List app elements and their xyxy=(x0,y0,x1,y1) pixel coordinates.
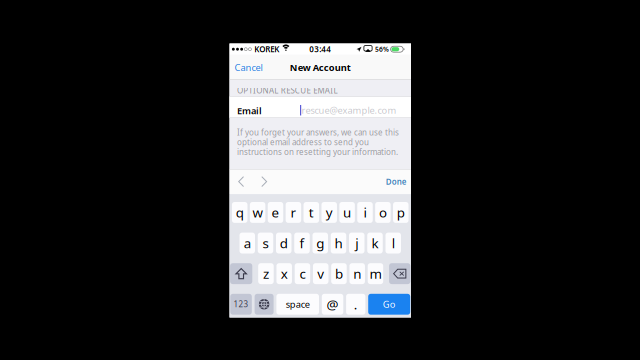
staticText: Done xyxy=(386,176,407,187)
staticText: a xyxy=(244,234,251,252)
button[interactable]: n xyxy=(349,263,365,284)
staticText: @ xyxy=(327,295,339,313)
staticText: KOREK xyxy=(254,44,279,54)
staticText: g xyxy=(316,234,324,252)
button[interactable]: u xyxy=(339,202,355,223)
button[interactable]: . xyxy=(346,294,365,315)
staticText: o xyxy=(379,204,387,221)
button[interactable]: r xyxy=(286,202,301,223)
staticText: v xyxy=(317,265,324,282)
button[interactable]: h xyxy=(331,233,346,253)
button[interactable]: g xyxy=(312,233,328,253)
button[interactable]: o xyxy=(375,202,391,223)
staticText: Go xyxy=(383,298,396,310)
staticText: space xyxy=(286,298,310,310)
staticText: y xyxy=(326,204,333,221)
button[interactable]: i xyxy=(357,202,373,223)
staticText: j xyxy=(355,234,358,252)
button[interactable]: m xyxy=(368,263,383,284)
staticText: w xyxy=(253,204,263,221)
button[interactable]: l xyxy=(385,233,401,253)
staticText: k xyxy=(371,234,378,252)
button[interactable]: d xyxy=(276,233,291,253)
staticText: u xyxy=(343,204,351,221)
button[interactable]: a xyxy=(239,233,255,253)
staticText: d xyxy=(280,234,288,252)
staticText: n xyxy=(353,265,361,282)
button[interactable]: Previous field xyxy=(229,169,256,194)
staticText: Email xyxy=(237,104,262,117)
button[interactable]: Done xyxy=(381,168,411,195)
staticText: 123 xyxy=(234,299,249,309)
button[interactable]: b xyxy=(331,263,347,284)
staticText: f xyxy=(299,234,304,252)
staticText: s xyxy=(262,234,268,252)
button[interactable]: Shift xyxy=(230,263,252,284)
button[interactable]: Next field xyxy=(256,169,273,194)
staticText: p xyxy=(397,204,405,221)
button[interactable]: j xyxy=(349,233,364,253)
button[interactable]: z xyxy=(258,263,274,284)
button[interactable]: e xyxy=(268,202,283,223)
button[interactable]: s xyxy=(258,233,273,253)
staticText: 03:44 xyxy=(309,44,331,54)
staticText: i xyxy=(363,204,366,221)
staticText: q xyxy=(236,204,244,221)
staticText: b xyxy=(335,265,343,282)
staticText: . xyxy=(354,295,358,313)
button[interactable]: w xyxy=(250,202,265,223)
button[interactable]: @ xyxy=(322,294,343,315)
button[interactable]: f xyxy=(294,233,310,253)
staticText: Cancel xyxy=(234,61,262,74)
button[interactable]: q xyxy=(232,202,247,223)
button[interactable]: x xyxy=(276,263,292,284)
button[interactable]: y xyxy=(321,202,337,223)
button[interactable]: 123 xyxy=(230,294,252,315)
staticText: x xyxy=(281,265,288,282)
button[interactable]: c xyxy=(295,263,310,284)
staticText: h xyxy=(334,234,342,252)
staticText: rescue@example.com xyxy=(301,104,396,116)
staticText: c xyxy=(299,265,305,282)
staticText: t xyxy=(309,204,314,221)
staticText: z xyxy=(263,265,269,282)
button[interactable]: Delete xyxy=(389,263,410,284)
button[interactable]: v xyxy=(313,263,328,284)
staticText: New Account xyxy=(290,61,351,74)
staticText: m xyxy=(369,265,381,282)
button[interactable]: Cancel xyxy=(229,56,267,79)
button[interactable]: p xyxy=(393,202,409,223)
staticText: OPTIONAL RESCUE EMAIL xyxy=(237,85,337,96)
staticText: e xyxy=(271,204,279,221)
button[interactable]: Go xyxy=(368,294,410,315)
staticText: l xyxy=(392,234,395,252)
staticText: r xyxy=(290,204,296,221)
button[interactable]: t xyxy=(303,202,319,223)
button[interactable]: space xyxy=(276,294,319,315)
staticText: If you forget your answers, we can use t… xyxy=(237,127,399,157)
button[interactable]: Switch keyboard xyxy=(255,294,274,315)
button[interactable]: k xyxy=(367,233,383,253)
staticText: 56% xyxy=(375,45,389,54)
